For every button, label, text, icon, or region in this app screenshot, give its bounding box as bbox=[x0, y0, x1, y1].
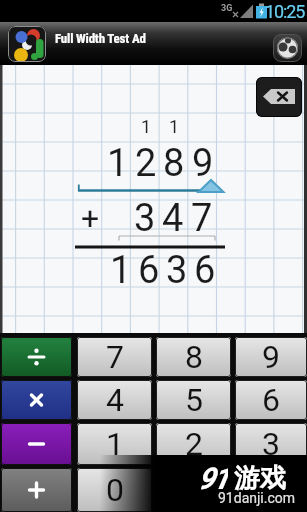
staticText: 1 bbox=[107, 141, 129, 185]
button[interactable] bbox=[256, 77, 302, 117]
button[interactable]: 0 bbox=[77, 468, 152, 512]
staticText: 2 bbox=[135, 141, 157, 185]
button[interactable]: Full Width Test Ad bbox=[0, 22, 307, 65]
staticText: 3G bbox=[221, 3, 233, 14]
staticText: 7 bbox=[106, 338, 124, 376]
staticText: 3 bbox=[262, 425, 280, 463]
button[interactable]: 8 bbox=[156, 337, 231, 377]
staticText: 7 bbox=[191, 196, 213, 240]
button[interactable]: 7 bbox=[77, 337, 152, 377]
button[interactable] bbox=[273, 34, 302, 62]
staticText: 3 bbox=[166, 248, 188, 292]
staticText: 6 bbox=[194, 248, 216, 292]
button[interactable]: 3 bbox=[235, 423, 307, 465]
staticText: 5 bbox=[185, 381, 203, 419]
staticText: 1 bbox=[141, 116, 152, 136]
staticText: 4 bbox=[162, 196, 184, 240]
staticText: 3 bbox=[134, 196, 156, 240]
button[interactable]: 6 bbox=[235, 380, 307, 420]
button[interactable]: 1 bbox=[77, 423, 152, 465]
button[interactable]: 91 bbox=[100, 455, 307, 512]
staticText: 6 bbox=[138, 248, 160, 292]
staticText: 游戏 bbox=[234, 462, 286, 495]
staticText: 8 bbox=[185, 338, 203, 376]
staticText: 2 bbox=[185, 425, 203, 463]
staticText: 8 bbox=[163, 141, 185, 185]
button[interactable] bbox=[1, 380, 72, 420]
staticText: 1 bbox=[110, 248, 132, 292]
staticText: 4 bbox=[106, 381, 124, 419]
staticText: 9 bbox=[262, 338, 280, 376]
staticText: 1 bbox=[106, 425, 124, 463]
button[interactable]: 9 bbox=[235, 337, 307, 377]
button[interactable] bbox=[1, 423, 72, 465]
staticText: + bbox=[81, 199, 100, 237]
button[interactable] bbox=[1, 337, 72, 377]
staticText: 10:25 bbox=[265, 1, 305, 22]
staticText: 0 bbox=[106, 471, 124, 509]
button[interactable]: 5 bbox=[156, 380, 231, 420]
button[interactable] bbox=[1, 468, 72, 512]
button[interactable]: 2 bbox=[156, 423, 231, 465]
staticText: 9 bbox=[192, 141, 214, 185]
staticText: Full Width Test Ad bbox=[55, 31, 146, 46]
staticText: 1 bbox=[169, 116, 180, 136]
staticText: 6 bbox=[262, 381, 280, 419]
button[interactable]: 4 bbox=[77, 380, 152, 420]
staticText: 91 bbox=[198, 461, 228, 495]
staticText: 91danji.com bbox=[218, 490, 296, 506]
